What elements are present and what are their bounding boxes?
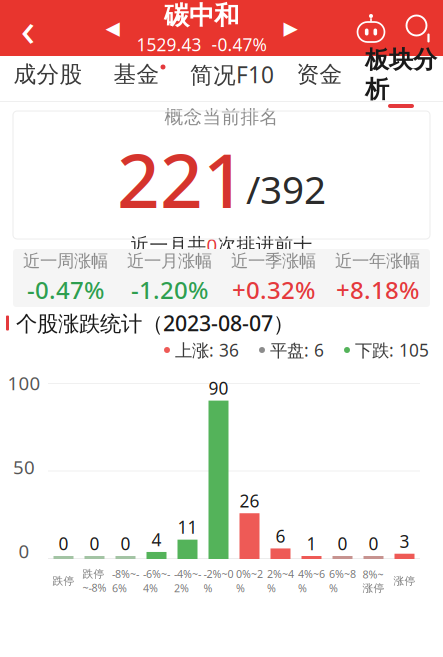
button[interactable]: Search [395, 0, 443, 56]
staticText: 0 [58, 532, 68, 555]
staticText: 6%~8% [329, 567, 356, 595]
staticText: 跌停~-8% [82, 567, 106, 595]
button[interactable]: Previous sector [97, 0, 127, 56]
staticText: 平盘: 6 [270, 338, 324, 361]
staticText: 0%~2% [236, 567, 263, 595]
staticText: 近一月涨幅 [127, 250, 212, 272]
button[interactable]: Back [0, 0, 56, 56]
staticText: 次排进前十 [217, 234, 312, 256]
staticText: 碳中和 [164, 0, 239, 31]
staticText: 近一年涨幅 [335, 250, 420, 272]
staticText: 资金 [296, 61, 342, 88]
staticText: 上涨: 36 [175, 338, 239, 361]
staticText: 4 [151, 528, 161, 551]
staticText: ◀ [105, 17, 119, 39]
staticText: 90 [208, 377, 228, 400]
staticText: 221 [117, 129, 246, 229]
staticText: 3 [399, 530, 409, 553]
staticText: 基金 [113, 61, 159, 88]
staticText: +0.32% [232, 274, 315, 306]
staticText: 0 [368, 532, 378, 555]
staticText: 50 [13, 455, 35, 479]
staticText: 板块分析 [365, 45, 437, 104]
button[interactable]: 基金 [96, 56, 184, 101]
staticText: -8%~-6% [112, 567, 139, 595]
staticText: 1 [306, 532, 316, 555]
button[interactable]: AI assistant [347, 0, 395, 56]
button[interactable]: 资金 [280, 56, 359, 101]
staticText: 0 [206, 233, 217, 257]
staticText: 成分股 [13, 61, 82, 88]
button[interactable]: Next sector [275, 0, 305, 56]
staticText: 简况F10 [190, 59, 274, 89]
staticText: -2%~0% [203, 567, 233, 595]
staticText: 概念当前排名 [164, 106, 278, 128]
staticText: 4%~6% [298, 567, 325, 595]
staticText: 涨停 [393, 574, 415, 587]
staticText: -0.47% [27, 274, 104, 306]
staticText: /392 [246, 163, 326, 215]
staticText: 6 [275, 524, 285, 547]
staticText: 近一周涨幅 [23, 250, 108, 272]
staticText: -1.20% [131, 274, 208, 306]
button[interactable]: 成分股 [0, 56, 96, 101]
staticText: 100 [7, 371, 40, 395]
staticText: 近一季涨幅 [231, 250, 316, 272]
staticText: 26 [239, 489, 259, 512]
staticText: 0 [89, 532, 99, 555]
button[interactable]: 简况F10 [184, 56, 280, 101]
staticText: 0 [337, 532, 347, 555]
staticText: 8%~涨停 [362, 567, 384, 595]
staticText: 跌停 [52, 574, 74, 587]
staticText: 11 [177, 516, 197, 539]
staticText: -4%~-2% [174, 567, 201, 595]
staticText: 个股涨跌统计（2023-08-07） [16, 309, 294, 337]
staticText: 0 [120, 532, 130, 555]
staticText: 下跌: 105 [355, 338, 429, 361]
staticText: 1529.43 -0.47% [136, 33, 266, 56]
staticText: 2%~4% [267, 567, 294, 595]
staticText: ▶ [283, 17, 297, 39]
staticText: ‹ [20, 0, 35, 60]
staticText: 近一月共 [130, 234, 206, 256]
staticText: -6%~-4% [143, 567, 170, 595]
staticText: 0 [18, 539, 29, 563]
staticText: +8.18% [336, 274, 419, 306]
button[interactable]: 板块分析 [359, 56, 443, 101]
